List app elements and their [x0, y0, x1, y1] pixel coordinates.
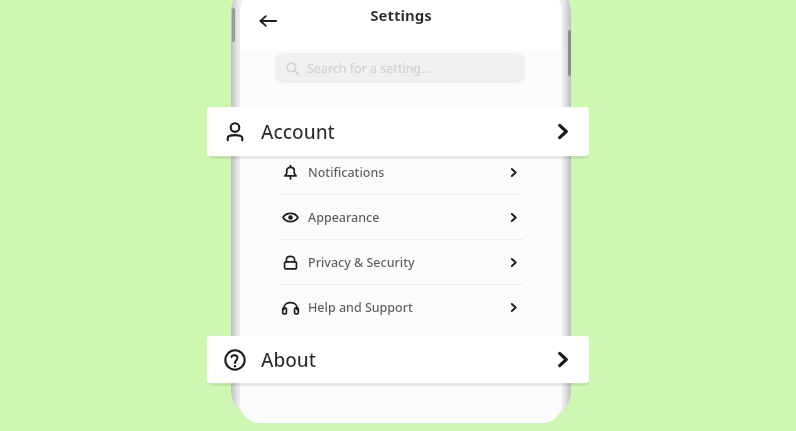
staticText: Privacy & Security [308, 254, 415, 271]
staticText: Search for a setting... [307, 60, 432, 77]
button[interactable]: Notifications [280, 150, 523, 195]
button[interactable]: Appearance [280, 195, 523, 240]
button[interactable]: Privacy & Security [280, 240, 523, 285]
staticText: Appearance [308, 209, 380, 226]
staticText: Help and Support [308, 299, 413, 316]
button[interactable]: Back [253, 6, 283, 36]
staticText: Notifications [308, 164, 385, 181]
button[interactable]: About [207, 336, 589, 383]
staticText: About [261, 347, 317, 373]
staticText: Settings [370, 5, 432, 25]
staticText: Account [261, 119, 335, 145]
button[interactable]: Help and Support [280, 285, 523, 330]
button[interactable]: Account [207, 107, 589, 156]
button[interactable]: Search for a setting... [275, 53, 525, 83]
